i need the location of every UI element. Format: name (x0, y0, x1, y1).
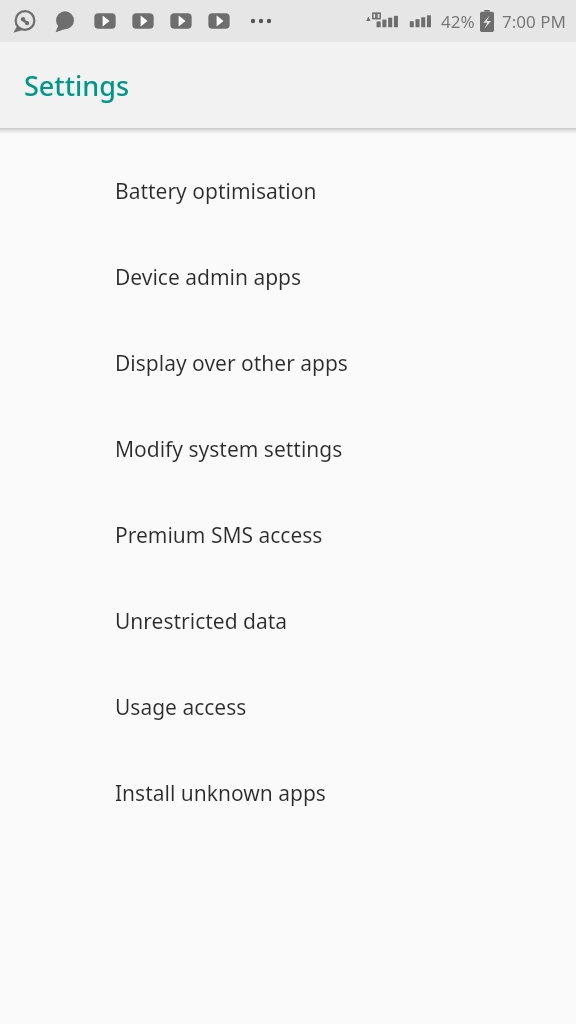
button[interactable]: Battery optimisation (0, 148, 576, 234)
staticText: Install unknown apps (115, 779, 326, 808)
staticText: 7:00 PM (502, 10, 566, 33)
staticText: Battery optimisation (115, 177, 317, 206)
button[interactable]: Display over other apps (0, 320, 576, 406)
staticText: Device admin apps (115, 263, 302, 292)
staticText: 42% (441, 10, 475, 33)
staticText: Unrestricted data (115, 607, 288, 636)
button[interactable]: Unrestricted data (0, 578, 576, 664)
button[interactable]: Premium SMS access (0, 492, 576, 578)
staticText: Settings (24, 67, 130, 104)
button[interactable]: Modify system settings (0, 406, 576, 492)
button[interactable]: Install unknown apps (0, 750, 576, 836)
button[interactable]: Device admin apps (0, 234, 576, 320)
staticText: Premium SMS access (115, 521, 323, 550)
staticText: Display over other apps (115, 349, 348, 378)
button[interactable]: Usage access (0, 664, 576, 750)
staticText: Modify system settings (115, 435, 343, 464)
staticText: Usage access (115, 693, 247, 722)
